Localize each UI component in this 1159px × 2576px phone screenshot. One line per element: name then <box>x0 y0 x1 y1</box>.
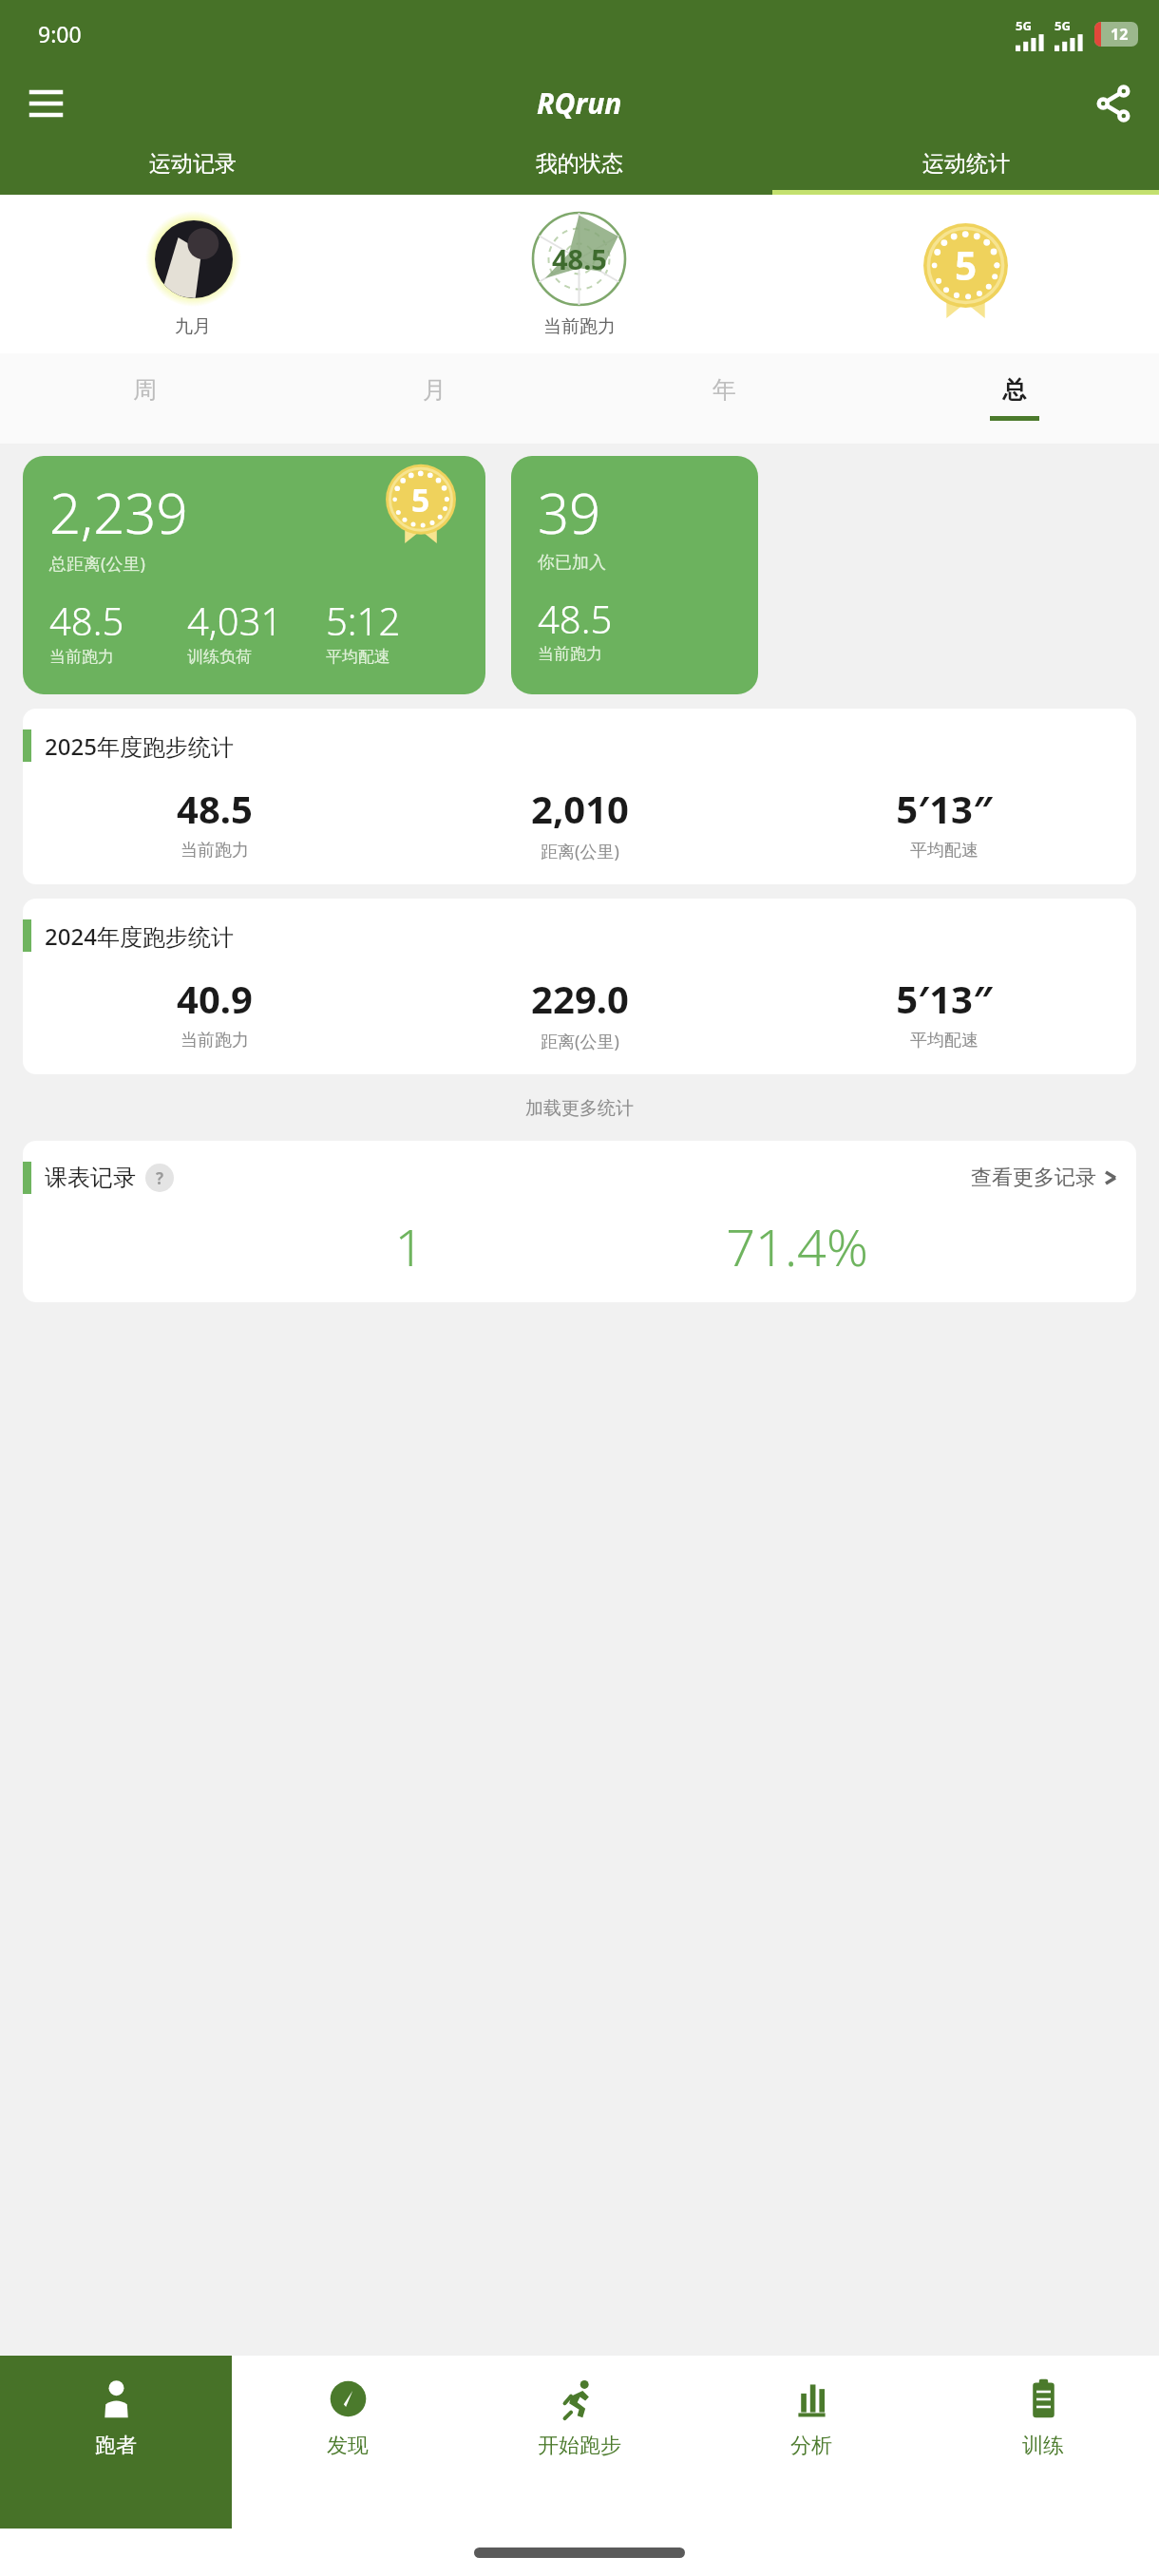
staticText: 5G <box>1054 17 1071 34</box>
staticText: 48.5 <box>177 783 253 834</box>
staticText: 5′13″ <box>896 973 993 1024</box>
staticText: 开始跑步 <box>538 2433 621 2459</box>
staticText: 查看更多记录 <box>971 1165 1096 1191</box>
button[interactable]: 九月 <box>0 211 386 338</box>
staticText: 5 <box>955 239 978 292</box>
staticText: 5G <box>1016 17 1032 34</box>
button[interactable]: 5 <box>23 456 485 694</box>
staticText: 距离(公里) <box>541 840 619 863</box>
button[interactable]: 训练 <box>927 2356 1159 2529</box>
staticText: 训练 <box>1022 2433 1064 2459</box>
button[interactable]: 查看更多记录 <box>971 1165 1136 1191</box>
staticText: 48.5 <box>538 593 613 644</box>
staticText: 九月 <box>175 315 211 338</box>
staticText: 2,010 <box>531 783 629 834</box>
staticText: 1 <box>264 1211 555 1281</box>
staticText: 平均配速 <box>910 1030 978 1051</box>
staticText: 总 <box>1002 375 1026 405</box>
staticText: 当前跑力 <box>543 315 616 338</box>
staticText: 39 <box>538 475 601 550</box>
button[interactable]: Share <box>1089 79 1138 128</box>
staticText: 4,031 <box>187 595 283 646</box>
staticText: 年 <box>712 375 736 405</box>
staticText: 运动记录 <box>149 150 237 178</box>
staticText: ? <box>156 1167 164 1189</box>
staticText: 9:00 <box>38 19 82 48</box>
button[interactable]: 跑者 <box>0 2356 232 2529</box>
staticText: RQrun <box>537 84 622 123</box>
button[interactable]: 2025年度跑步统计 <box>23 709 1136 884</box>
staticText: 我的状态 <box>536 150 623 178</box>
staticText: 71.4% <box>555 1211 1039 1281</box>
staticText: 跑者 <box>95 2433 137 2459</box>
button[interactable]: 总 <box>869 353 1159 444</box>
staticText: 你已加入 <box>538 552 606 574</box>
button[interactable]: Menu <box>21 79 70 128</box>
button[interactable]: 2024年度跑步统计 <box>23 899 1136 1074</box>
button[interactable]: 年 <box>579 353 869 444</box>
staticText: 发现 <box>327 2433 369 2459</box>
staticText: 运动统计 <box>922 150 1010 178</box>
button[interactable]: 月 <box>290 353 579 444</box>
other: Help <box>145 1164 174 1192</box>
staticText: 48.5 <box>552 240 607 277</box>
staticText: 分析 <box>790 2433 832 2459</box>
staticText: 12 <box>1111 24 1129 45</box>
staticText: 总距离(公里) <box>49 552 145 576</box>
staticText: 2,239 <box>49 475 188 550</box>
button[interactable]: 加载更多统计 <box>0 1093 1159 1124</box>
staticText: 2024年度跑步统计 <box>45 920 234 952</box>
staticText: 当前跑力 <box>49 647 114 667</box>
button[interactable]: 周 <box>0 353 290 444</box>
button[interactable]: 开始跑步 <box>464 2356 695 2529</box>
staticText: 5′13″ <box>896 783 993 834</box>
staticText: 距离(公里) <box>541 1030 619 1053</box>
staticText: 40.9 <box>177 973 253 1024</box>
staticText: 加载更多统计 <box>525 1097 634 1120</box>
button[interactable]: 5 <box>772 222 1159 327</box>
staticText: 平均配速 <box>910 840 978 862</box>
staticText: 当前跑力 <box>180 1030 249 1051</box>
staticText: 训练负荷 <box>187 647 252 667</box>
button[interactable]: 分析 <box>695 2356 927 2529</box>
staticText: 2025年度跑步统计 <box>45 730 234 762</box>
staticText: 平均配速 <box>326 647 390 667</box>
staticText: 5 <box>411 478 430 521</box>
button[interactable]: 48.5 <box>386 211 772 338</box>
button[interactable]: 我的状态 <box>386 139 772 195</box>
button[interactable]: 39 <box>511 456 758 694</box>
staticText: 5:12 <box>326 595 401 646</box>
staticText: 48.5 <box>49 595 124 646</box>
staticText: 229.0 <box>531 973 629 1024</box>
button[interactable]: 运动统计 <box>772 139 1159 195</box>
button[interactable]: 课表记录 <box>23 1141 1136 1302</box>
staticText: 课表记录 <box>45 1164 136 1192</box>
staticText: 当前跑力 <box>180 840 249 862</box>
button[interactable]: 运动记录 <box>0 139 386 195</box>
button[interactable]: 发现 <box>232 2356 464 2529</box>
staticText: 月 <box>423 375 446 405</box>
staticText: 周 <box>133 375 157 405</box>
staticText: 当前跑力 <box>538 644 602 664</box>
